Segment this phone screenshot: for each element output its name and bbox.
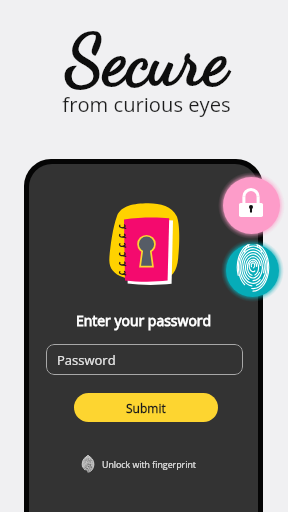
- staticText: Enter your password: [29, 311, 258, 330]
- button[interactable]: Password: [46, 344, 243, 375]
- staticText: Submit: [126, 400, 166, 416]
- button[interactable]: Unlock with fingerprint: [82, 456, 196, 474]
- staticText: from curious eyes: [62, 90, 231, 118]
- button[interactable]: Fingerprint unlock: [226, 244, 279, 297]
- button[interactable]: Password lock: [223, 177, 280, 234]
- button[interactable]: Submit: [74, 393, 218, 422]
- staticText: Secure: [66, 19, 228, 103]
- staticText: Password: [57, 351, 116, 369]
- staticText: Unlock with fingerprint: [102, 459, 196, 471]
